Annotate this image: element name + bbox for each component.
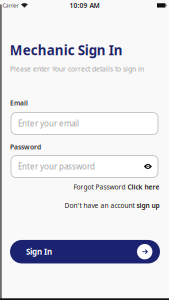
button[interactable]: Enter your password [10, 155, 158, 178]
staticText: Email [10, 99, 28, 107]
staticText: 10:09 AM [69, 1, 99, 10]
staticText: Don't have an account sign up [64, 201, 159, 210]
button[interactable]: Sign In [10, 240, 160, 263]
button[interactable]: Show password [144, 163, 152, 170]
staticText: Carrier [2, 2, 18, 9]
button[interactable]: Enter your email [10, 112, 158, 135]
staticText: Sign In [26, 246, 52, 257]
staticText: Password [10, 143, 41, 151]
staticText: Mechanic Sign In [10, 41, 123, 59]
button[interactable]: Forgot Password Click here [9, 183, 159, 191]
staticText: Enter your email [18, 118, 79, 129]
staticText: Enter your password [18, 161, 95, 172]
staticText: Please enter Your correct details to sig… [10, 65, 144, 73]
staticText: Forgot Password Click here [73, 183, 159, 191]
button[interactable]: Don't have an account sign up [9, 201, 159, 210]
